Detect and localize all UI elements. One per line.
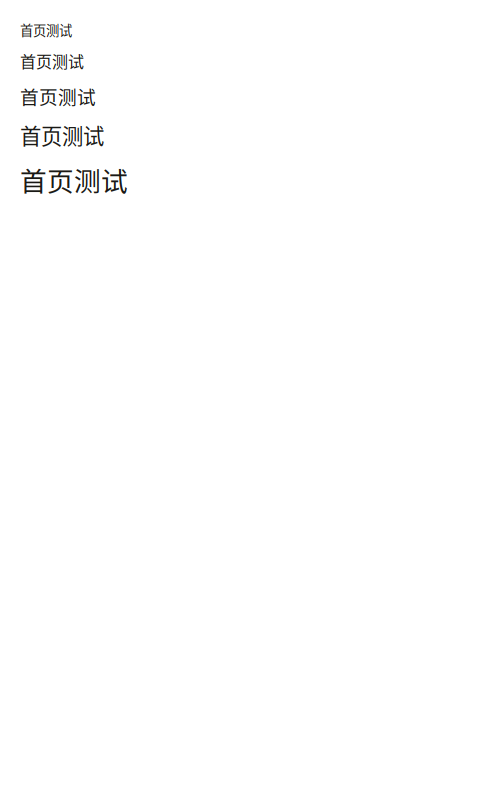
staticText: 首页测试 [20,82,96,109]
staticText: 首页测试 [20,20,72,39]
staticText: 首页测试 [20,49,84,72]
staticText: 首页测试 [20,160,128,199]
staticText: 首页测试 [20,119,104,150]
